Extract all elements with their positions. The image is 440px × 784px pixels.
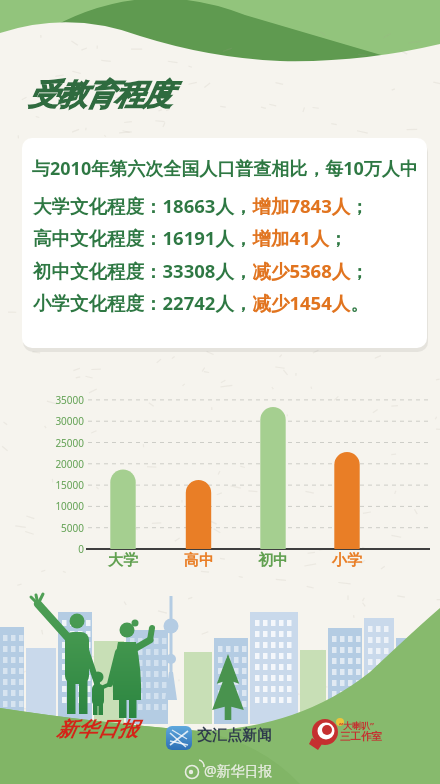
staticText: 小学 — [332, 551, 362, 570]
button[interactable]: 初中 — [243, 551, 303, 570]
staticText: 三工作室 — [340, 730, 382, 743]
button[interactable]: 大学 — [93, 551, 153, 570]
staticText: 小学文化程度：22742人，减少1454人。 — [33, 290, 369, 315]
button[interactable]: @新华日报 — [204, 761, 273, 780]
staticText: 初中文化程度：33308人，减少5368人； — [33, 258, 369, 283]
staticText: 0 — [24, 542, 84, 556]
button[interactable] — [22, 138, 427, 348]
staticText: 高中文化程度：16191人，增加41人； — [33, 225, 348, 250]
staticText: 与2010年第六次全国人口普查相比，每10万人中 — [32, 156, 418, 181]
staticText: 5000 — [24, 521, 84, 535]
button[interactable]: 小学 — [317, 551, 377, 570]
button[interactable]: “大喇叭” — [339, 719, 375, 731]
staticText: 10000 — [24, 499, 84, 513]
staticText: 受教育程度 — [28, 76, 171, 114]
staticText: 大学文化程度：18663人，增加7843人； — [33, 193, 369, 218]
button[interactable]: 新华日报 — [56, 717, 138, 742]
staticText: 大学 — [108, 551, 138, 570]
button[interactable]: 高中 — [169, 551, 229, 570]
staticText: 25000 — [24, 436, 84, 450]
staticText: 15000 — [24, 478, 84, 492]
staticText: 初中 — [258, 551, 288, 570]
staticText: 20000 — [24, 457, 84, 471]
staticText: 高中 — [184, 551, 214, 570]
staticText: 30000 — [24, 414, 84, 428]
staticText: 35000 — [24, 393, 84, 407]
button[interactable]: 交汇点新闻 — [197, 726, 272, 745]
